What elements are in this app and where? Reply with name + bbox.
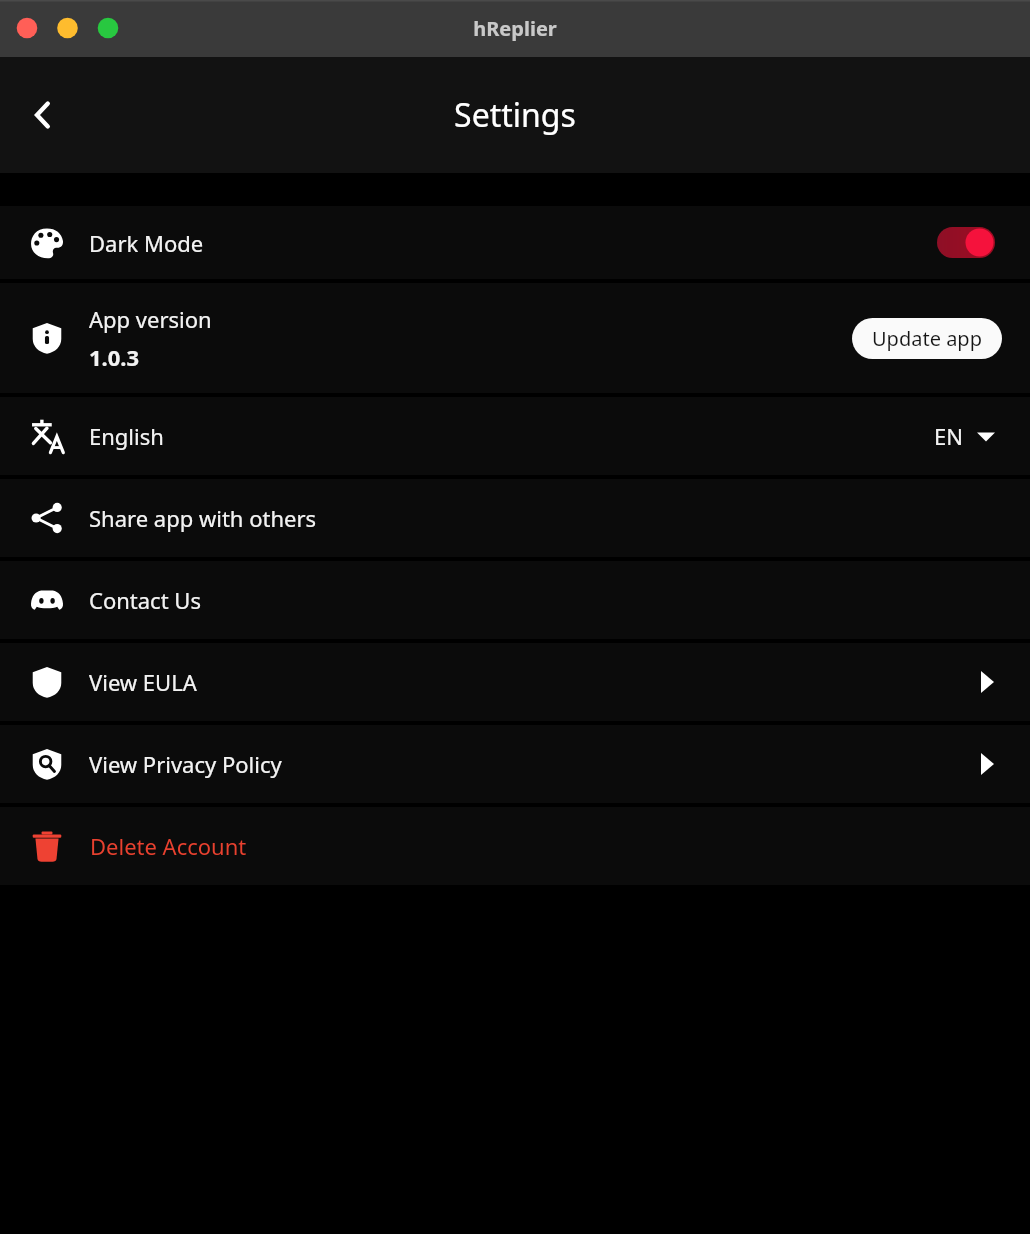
staticText: View Privacy Policy [89, 749, 981, 779]
button[interactable]: Dark Mode [0, 206, 1030, 279]
staticText: EN [934, 421, 963, 451]
staticText: Share app with others [89, 503, 1030, 533]
button[interactable]: View EULA [0, 643, 1030, 721]
staticText: Update app [872, 325, 982, 352]
button[interactable]: Share app with others [0, 479, 1030, 557]
button[interactable]: Contact Us [0, 561, 1030, 639]
button[interactable]: Back [0, 72, 86, 158]
staticText: Settings [454, 93, 576, 137]
staticText: Contact Us [89, 585, 1030, 615]
staticText: hReplier [473, 15, 557, 42]
staticText: 1.0.3 [89, 342, 140, 372]
button[interactable]: English [0, 397, 1030, 475]
staticText: View EULA [89, 667, 981, 697]
button[interactable]: Delete Account [0, 807, 1030, 885]
staticText: App version [89, 304, 212, 334]
staticText: English [89, 421, 934, 451]
button[interactable]: Dark Mode toggle [937, 227, 995, 258]
button[interactable]: View Privacy Policy [0, 725, 1030, 803]
staticText: Delete Account [90, 831, 1030, 861]
staticText: Dark Mode [89, 228, 937, 258]
button[interactable]: App version [0, 283, 1030, 393]
button[interactable]: Update app [852, 318, 1002, 359]
